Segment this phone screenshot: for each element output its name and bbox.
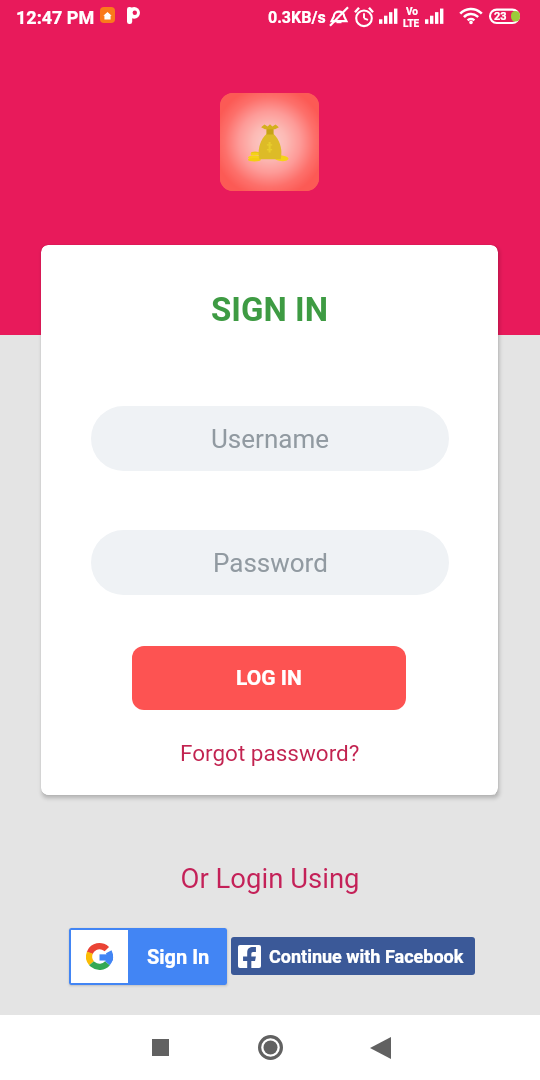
button[interactable]: Forgot password? <box>41 736 498 770</box>
staticText: Forgot password? <box>180 740 360 766</box>
button[interactable]: Username <box>91 406 449 471</box>
button[interactable]: Continue with Facebook <box>231 937 475 975</box>
staticText: LOG IN <box>236 666 302 691</box>
button[interactable]: LOG IN <box>132 646 406 710</box>
button[interactable]: Home <box>215 1015 325 1080</box>
staticText: 0.3KB/s <box>268 8 326 27</box>
staticText: SIGN IN <box>41 290 498 329</box>
staticText: Username <box>211 424 329 454</box>
button[interactable]: Recents <box>105 1015 215 1080</box>
staticText: Or Login Using <box>0 862 540 894</box>
staticText: Password <box>213 548 328 578</box>
staticText: LTE <box>403 18 420 29</box>
staticText: Continue with Facebook <box>269 946 464 967</box>
staticText: Sign In <box>147 945 210 968</box>
staticText: 12:47 PM <box>16 7 95 28</box>
staticText: Vo <box>406 6 418 18</box>
button[interactable]: Password <box>91 530 449 595</box>
staticText: 23 <box>494 10 507 23</box>
button[interactable]: Sign In <box>69 928 227 985</box>
button[interactable]: Back <box>325 1015 435 1080</box>
